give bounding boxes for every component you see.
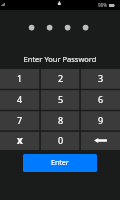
staticText: Enter Your Password <box>0 54 120 64</box>
button[interactable]: 2 <box>41 69 80 89</box>
button[interactable]: 1 <box>0 69 39 89</box>
staticText: 5 <box>58 93 64 105</box>
button[interactable]: 5 <box>41 90 80 110</box>
staticText: 8 <box>58 114 64 126</box>
button[interactable]: 7 <box>0 111 39 130</box>
button[interactable]: Enter <box>23 154 97 172</box>
staticText: 4 <box>17 93 23 105</box>
staticText: 7 <box>17 114 23 126</box>
button[interactable]: 8 <box>41 111 80 130</box>
staticText: 2 <box>58 72 64 84</box>
button[interactable]: Backspace <box>81 132 120 150</box>
staticText: 3 <box>98 72 104 84</box>
staticText: 6 <box>98 93 104 105</box>
staticText: 9 <box>98 114 104 126</box>
button[interactable]: 0 <box>41 132 80 150</box>
button[interactable]: 3 <box>81 69 120 89</box>
staticText: 98% <box>98 2 107 8</box>
staticText: Enter <box>51 158 69 168</box>
button[interactable]: Clear <box>0 132 39 150</box>
staticText: 0 <box>58 134 64 146</box>
staticText: X <box>17 135 23 146</box>
button[interactable]: 4 <box>0 90 39 110</box>
button[interactable]: 9 <box>81 111 120 130</box>
button[interactable]: 6 <box>81 90 120 110</box>
staticText: 1 <box>17 72 23 84</box>
